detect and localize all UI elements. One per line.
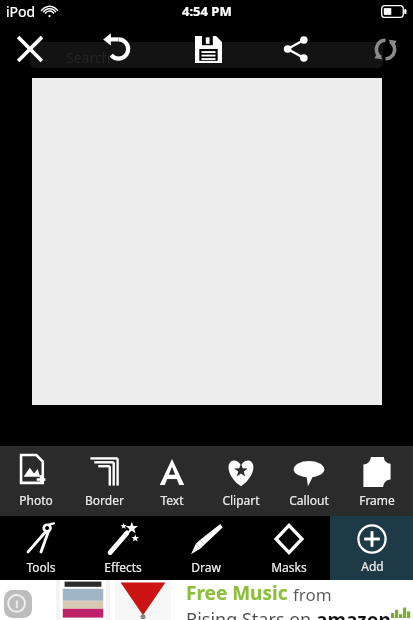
staticText: Add: [361, 558, 384, 574]
staticText: from: [293, 583, 332, 606]
button[interactable]: Border: [72, 455, 136, 508]
button[interactable]: Share: [274, 27, 318, 71]
button[interactable]: Tools: [9, 522, 73, 575]
staticText: Draw: [191, 559, 221, 575]
staticText: Photo: [19, 492, 53, 508]
button[interactable]: Free Music: [0, 580, 413, 620]
button[interactable]: Frame: [345, 455, 409, 508]
staticText: Tools: [26, 559, 56, 575]
staticText: Callout: [289, 492, 329, 508]
button[interactable]: Redo: [363, 27, 407, 71]
staticText: Clipart: [222, 492, 260, 508]
staticText: iPod: [6, 2, 36, 21]
staticText: Frame: [359, 492, 395, 508]
button[interactable]: Ad info: [4, 590, 32, 618]
button[interactable]: Text: [140, 455, 204, 508]
staticText: Masks: [271, 559, 307, 575]
button[interactable]: Add: [330, 516, 413, 580]
button[interactable]: Save: [186, 27, 230, 71]
staticText: Free Music: [186, 580, 293, 606]
button[interactable]: Clipart: [209, 455, 273, 508]
button[interactable]: Masks: [257, 522, 321, 575]
button[interactable]: Draw: [174, 522, 238, 575]
staticText: Effects: [104, 559, 142, 575]
staticText: Text: [160, 492, 184, 508]
staticText: 4:54 PM: [182, 2, 232, 20]
button[interactable]: Undo: [93, 26, 139, 72]
button[interactable]: Callout: [277, 455, 341, 508]
staticText: amazon: [316, 607, 391, 620]
staticText: Border: [85, 492, 124, 508]
button[interactable]: Photo: [4, 455, 68, 508]
button[interactable]: Effects: [91, 522, 155, 575]
button[interactable]: Close: [8, 27, 52, 71]
staticText: Rising Stars on: [186, 607, 316, 620]
staticText: Search: [66, 48, 111, 67]
